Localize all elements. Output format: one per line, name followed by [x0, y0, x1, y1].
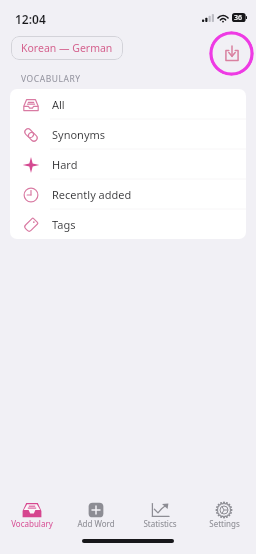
staticText: 12:04	[15, 11, 46, 27]
staticText: Settings	[209, 518, 240, 529]
button[interactable]: All	[10, 89, 246, 119]
button[interactable]: Vocabulary	[0, 500, 64, 534]
staticText: 36	[234, 13, 243, 22]
staticText: VOCABULARY	[21, 73, 81, 85]
button[interactable]: Recently added	[10, 179, 246, 209]
button[interactable]: Settings	[192, 500, 256, 534]
staticText: Vocabulary	[11, 518, 53, 529]
staticText: All	[52, 97, 65, 112]
button[interactable]: Statistics	[128, 500, 192, 534]
staticText: Statistics	[143, 518, 177, 529]
button[interactable]: Import vocabulary	[209, 31, 254, 76]
button[interactable]: Synonyms	[10, 119, 246, 149]
staticText: Hard	[52, 157, 78, 172]
button[interactable]: Tags	[10, 209, 246, 239]
staticText: Recently added	[52, 187, 132, 202]
button[interactable]: Korean — German	[11, 36, 123, 60]
staticText: Korean — German	[21, 41, 113, 55]
staticText: Tags	[52, 217, 76, 232]
button[interactable]: Add Word	[64, 500, 128, 534]
staticText: Add Word	[77, 518, 115, 529]
staticText: Synonyms	[52, 127, 106, 142]
button[interactable]: Hard	[10, 149, 246, 179]
